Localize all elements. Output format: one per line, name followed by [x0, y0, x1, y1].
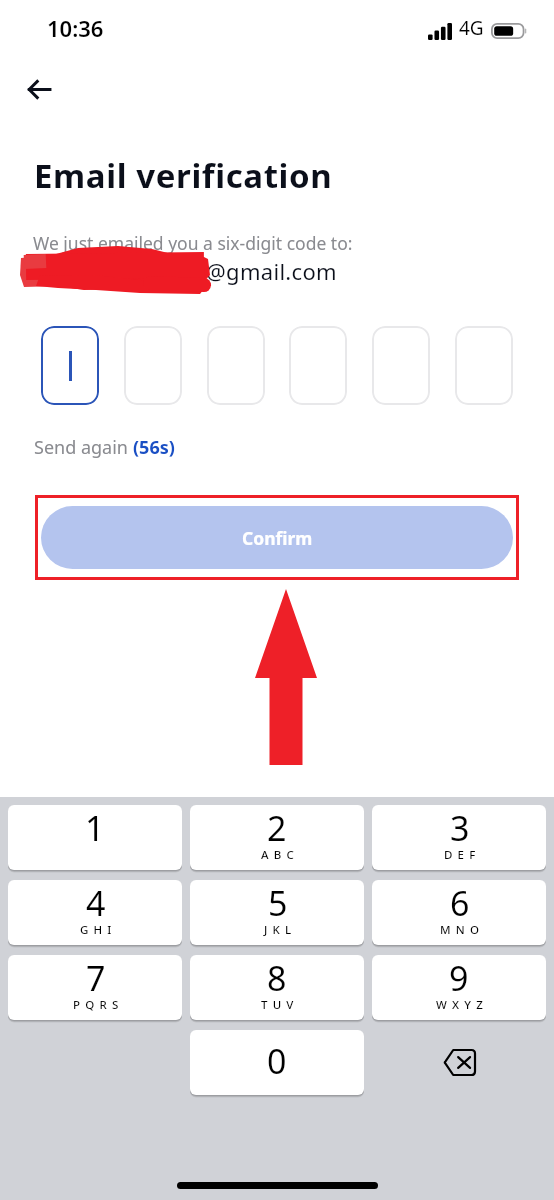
staticText: JKL: [264, 922, 297, 938]
staticText: 3: [450, 805, 470, 851]
button[interactable]: 8: [190, 955, 364, 1020]
button[interactable]: Confirm: [41, 506, 513, 569]
button[interactable]: 2: [190, 805, 364, 870]
staticText: ABC: [261, 847, 299, 863]
button[interactable]: 6: [372, 880, 546, 945]
button[interactable]: [124, 326, 182, 405]
staticText: DEF: [444, 847, 481, 863]
staticText: WXYZ: [436, 997, 488, 1013]
button[interactable]: [207, 326, 265, 405]
staticText: Confirm: [242, 526, 313, 550]
staticText: 5: [268, 880, 288, 926]
staticText: 7: [86, 955, 106, 1001]
button[interactable]: 0: [190, 1030, 364, 1095]
staticText: 8: [267, 955, 287, 1001]
button[interactable]: 1: [8, 805, 182, 870]
button[interactable]: 5: [190, 880, 364, 945]
staticText: 10:36: [47, 13, 104, 43]
staticText: (56s): [133, 435, 175, 460]
button[interactable]: Back: [16, 66, 62, 112]
staticText: 6: [450, 880, 470, 926]
staticText: 9: [449, 955, 469, 1001]
staticText: @gmail.com: [206, 256, 337, 286]
button[interactable]: 4: [8, 880, 182, 945]
staticText: 4G: [459, 15, 484, 41]
button[interactable]: [41, 326, 99, 405]
staticText: TUV: [261, 997, 299, 1013]
staticText: MNO: [440, 922, 485, 938]
staticText: Email verification: [34, 153, 333, 198]
button[interactable]: [372, 326, 430, 405]
staticText: 1: [85, 805, 105, 851]
staticText: 0: [267, 1038, 287, 1084]
button[interactable]: 3: [372, 805, 546, 870]
staticText: PQRS: [73, 997, 124, 1013]
button[interactable]: [289, 326, 347, 405]
button[interactable]: 7: [8, 955, 182, 1020]
staticText: We just emailed you a six-digit code to:: [33, 231, 353, 255]
staticText: 4: [86, 880, 106, 926]
staticText: Send again: [34, 435, 133, 460]
staticText: GHI: [80, 922, 117, 938]
button[interactable]: Backspace: [372, 1030, 546, 1095]
staticText: 2: [267, 805, 287, 851]
button[interactable]: Send again: [34, 435, 175, 460]
button[interactable]: 9: [372, 955, 546, 1020]
button[interactable]: [455, 326, 513, 405]
